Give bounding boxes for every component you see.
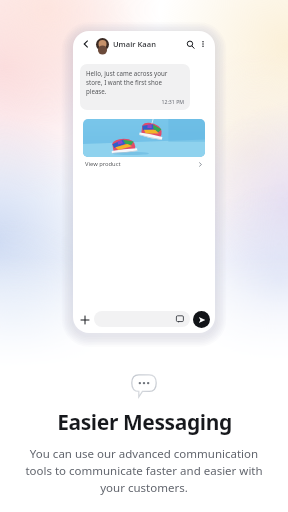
- staticText: You can use our advanced communication t…: [24, 446, 264, 495]
- staticText: Easier Messaging: [57, 408, 232, 437]
- button[interactable]: Add attachment: [78, 313, 91, 326]
- staticText: Hello, just came across your store, I wa…: [86, 69, 184, 96]
- button[interactable]: Search: [183, 37, 197, 51]
- staticText: View product: [85, 160, 121, 168]
- staticText: Umair Kaan: [113, 39, 156, 49]
- button[interactable]: Send: [193, 311, 210, 328]
- button[interactable]: Back: [79, 37, 93, 51]
- staticText: 12:31 PM: [86, 98, 184, 105]
- button[interactable]: Quick replies: [94, 311, 190, 327]
- button[interactable]: Hello, just came across your store, I wa…: [80, 64, 190, 110]
- button[interactable]: View product: [80, 116, 208, 171]
- button[interactable]: More options: [197, 38, 209, 50]
- other: Quick replies: [176, 315, 184, 323]
